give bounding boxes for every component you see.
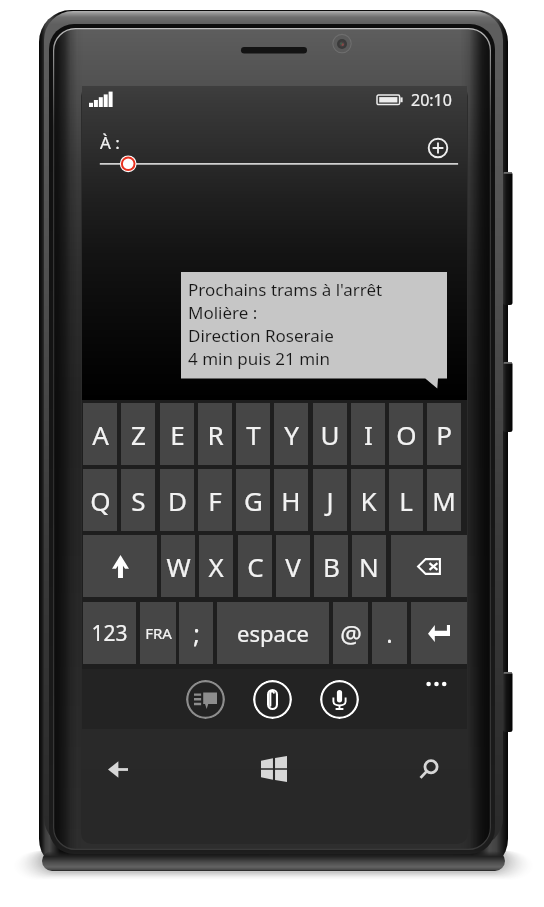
button[interactable]: V [276,535,310,597]
button[interactable]: T [236,403,270,465]
staticText: K [360,483,377,518]
button[interactable]: Retour [96,747,140,791]
staticText: W [166,549,191,584]
staticText: A [92,417,109,452]
staticText: . [386,617,393,650]
button[interactable]: G [236,469,270,531]
button[interactable]: M [427,469,461,531]
button[interactable]: L [389,469,423,531]
staticText: V [285,549,301,584]
button[interactable]: R [198,403,232,465]
staticText: J [326,483,334,518]
button[interactable]: FRA [140,602,176,664]
button[interactable]: Z [121,403,155,465]
button[interactable]: Émoticônes [186,680,225,719]
button[interactable]: D [160,469,194,531]
staticText: 4 min puis 21 min [188,347,330,370]
staticText: G [244,483,263,518]
button[interactable]: P [427,403,461,465]
staticText: T [246,417,261,452]
staticText: 123 [91,619,128,648]
button[interactable]: E [160,403,194,465]
button[interactable]: Plus d'options [412,668,466,700]
staticText: I [364,417,373,452]
button[interactable]: H [274,469,308,531]
staticText: FRA [145,623,172,643]
button[interactable]: Rechercher [406,747,450,791]
staticText: B [323,549,340,584]
staticText: O [396,417,417,452]
staticText: R [207,417,224,452]
button[interactable]: N [352,535,386,597]
staticText: Direction Roseraie [188,324,334,347]
button[interactable]: Dicter [320,680,359,719]
staticText: H [281,483,301,518]
staticText: C [247,549,264,584]
button[interactable]: Majuscule [83,535,157,597]
button[interactable]: Y [274,403,308,465]
button[interactable]: O [389,403,423,465]
staticText: L [399,483,413,518]
button[interactable]: espace [217,602,329,664]
button[interactable]: B [314,535,348,597]
staticText: Z [131,417,146,452]
staticText: X [208,549,224,584]
button[interactable]: @ [333,602,368,664]
staticText: F [208,483,222,518]
staticText: Prochains trams à l'arrêt [188,278,383,301]
staticText: À : [100,131,120,154]
button[interactable]: . [372,602,407,664]
staticText: D [168,483,187,518]
staticText: Molière : [188,301,258,324]
button[interactable]: S [121,469,155,531]
staticText: Y [284,417,299,452]
staticText: N [359,549,379,584]
button[interactable]: U [313,403,347,465]
button[interactable]: J [313,469,347,531]
button[interactable]: K [351,469,385,531]
staticText: 20:10 [411,89,452,111]
button[interactable]: Ajouter un destinataire [424,134,452,162]
staticText: S [131,483,146,518]
button[interactable]: Entrée [411,602,467,664]
button[interactable]: A [83,403,117,465]
staticText: P [436,417,452,452]
staticText: Q [90,483,111,518]
button[interactable]: Q [83,469,117,531]
button[interactable]: F [198,469,232,531]
button[interactable]: ; [179,602,213,664]
staticText: M [432,483,456,518]
button[interactable]: W [161,535,195,597]
button[interactable]: Accueil Windows [252,747,296,791]
button[interactable]: 123 [83,602,136,664]
button[interactable]: C [238,535,272,597]
button[interactable]: Joindre un fichier [253,680,292,719]
staticText: U [320,417,340,452]
staticText: @ [340,617,362,650]
button[interactable]: Retour arrière [391,535,467,597]
staticText: espace [237,618,309,648]
staticText: ; [193,616,200,650]
staticText: E [170,417,185,452]
button[interactable]: X [199,535,233,597]
button[interactable]: I [351,403,385,465]
